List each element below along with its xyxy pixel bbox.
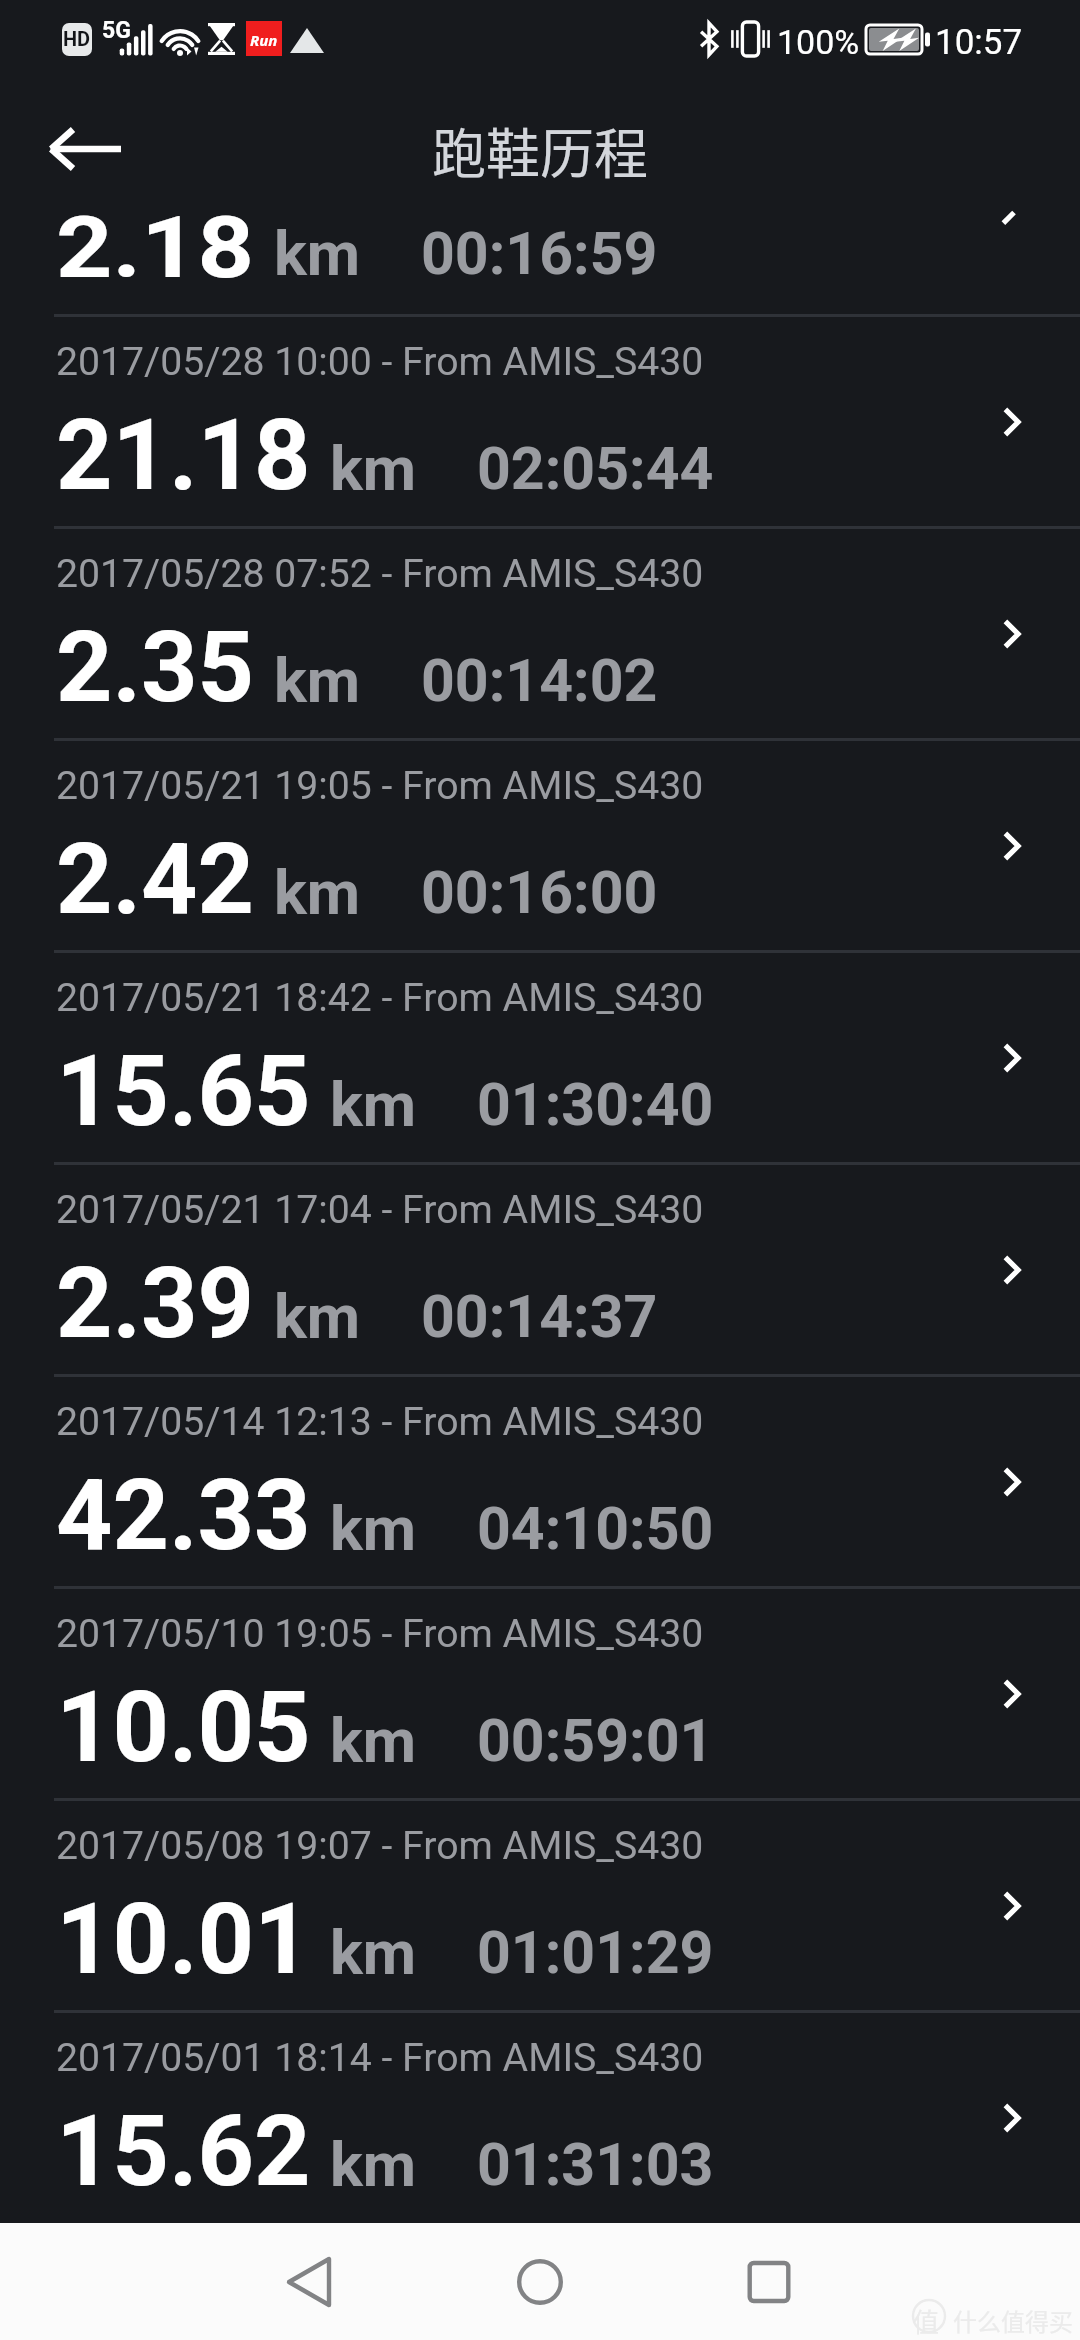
button[interactable]: 2017/05/21 19:05 - From AMIS_S430 bbox=[0, 738, 1080, 950]
staticText: 10.05 bbox=[56, 1670, 311, 1785]
staticText: 2017/05/28 10:00 - From AMIS_S430 bbox=[56, 339, 704, 385]
staticText: km bbox=[274, 218, 361, 290]
button[interactable]: Home bbox=[480, 2222, 600, 2339]
staticText: 00:14:37 bbox=[421, 1282, 658, 1351]
staticText: 01:30:40 bbox=[477, 1070, 714, 1139]
staticText: Run bbox=[250, 30, 278, 50]
staticText: 02:05:44 bbox=[477, 434, 714, 503]
staticText: 01:31:03 bbox=[477, 2130, 714, 2199]
button[interactable]: 2017/05/21 17:04 - From AMIS_S430 bbox=[0, 1162, 1080, 1374]
staticText: km bbox=[330, 433, 417, 505]
staticText: km bbox=[274, 1281, 361, 1353]
button[interactable]: 2017/05/10 19:05 - From AMIS_S430 bbox=[0, 1586, 1080, 1798]
staticText: km bbox=[330, 1917, 417, 1989]
staticText: 2017/05/14 12:13 - From AMIS_S430 bbox=[56, 1399, 704, 1445]
staticText: 00:16:59 bbox=[421, 219, 658, 288]
staticText: km bbox=[330, 2129, 417, 2201]
staticText: km bbox=[330, 1705, 417, 1777]
staticText: 00:14:02 bbox=[421, 646, 658, 715]
staticText: 2017/05/21 18:42 - From AMIS_S430 bbox=[56, 975, 704, 1021]
staticText: 什么值得买 bbox=[953, 2303, 1073, 2338]
staticText: 2.42 bbox=[56, 822, 255, 937]
staticText: 2.18 bbox=[56, 199, 255, 298]
staticText: 2017/05/28 07:52 - From AMIS_S430 bbox=[56, 551, 704, 597]
staticText: 00:16:00 bbox=[421, 858, 658, 927]
staticText: 42.33 bbox=[56, 1458, 311, 1573]
button[interactable]: Back bbox=[249, 2222, 369, 2339]
staticText: 2017/05/21 19:05 - From AMIS_S430 bbox=[56, 763, 704, 809]
staticText: 值 bbox=[913, 2302, 940, 2340]
staticText: 01:01:29 bbox=[477, 1918, 714, 1987]
button[interactable]: 2017/05/14 12:13 - From AMIS_S430 bbox=[0, 1374, 1080, 1586]
staticText: 15.65 bbox=[56, 1034, 311, 1149]
staticText: 跑鞋历程 bbox=[432, 111, 648, 189]
staticText: 00:59:01 bbox=[477, 1706, 714, 1775]
button[interactable]: Recent apps bbox=[709, 2222, 829, 2339]
staticText: km bbox=[274, 857, 361, 929]
button[interactable]: 2017/05/28 07:52 - From AMIS_S430 bbox=[0, 526, 1080, 738]
button[interactable]: 2017/05/01 18:14 - From AMIS_S430 bbox=[0, 2010, 1080, 2222]
staticText: 10.01 bbox=[56, 1882, 311, 1997]
button[interactable]: 2017/05/21 18:42 - From AMIS_S430 bbox=[0, 950, 1080, 1162]
staticText: km bbox=[330, 1493, 417, 1565]
button[interactable]: 2017/05/08 19:07 - From AMIS_S430 bbox=[0, 1798, 1080, 2010]
staticText: 2.35 bbox=[56, 610, 255, 725]
staticText: 2017/05/01 18:14 - From AMIS_S430 bbox=[56, 2035, 704, 2081]
staticText: HD bbox=[63, 27, 91, 50]
staticText: km bbox=[274, 645, 361, 717]
button[interactable]: 2017/05/28 10:00 - From AMIS_S430 bbox=[0, 314, 1080, 526]
staticText: 2017/05/21 17:04 - From AMIS_S430 bbox=[56, 1187, 704, 1233]
staticText: 2017/05/10 19:05 - From AMIS_S430 bbox=[56, 1611, 704, 1657]
button[interactable]: 2.18 bbox=[0, 190, 1080, 314]
button[interactable]: Back bbox=[8, 98, 160, 190]
staticText: 2017/05/08 19:07 - From AMIS_S430 bbox=[56, 1823, 704, 1869]
staticText: 15.62 bbox=[56, 2094, 311, 2209]
staticText: 5G bbox=[102, 17, 131, 44]
staticText: 10:57 bbox=[935, 22, 1023, 63]
staticText: 100% bbox=[777, 22, 860, 62]
staticText: 21.18 bbox=[56, 398, 311, 513]
staticText: km bbox=[330, 1069, 417, 1141]
staticText: 2.39 bbox=[56, 1246, 255, 1361]
staticText: 04:10:50 bbox=[477, 1494, 714, 1563]
